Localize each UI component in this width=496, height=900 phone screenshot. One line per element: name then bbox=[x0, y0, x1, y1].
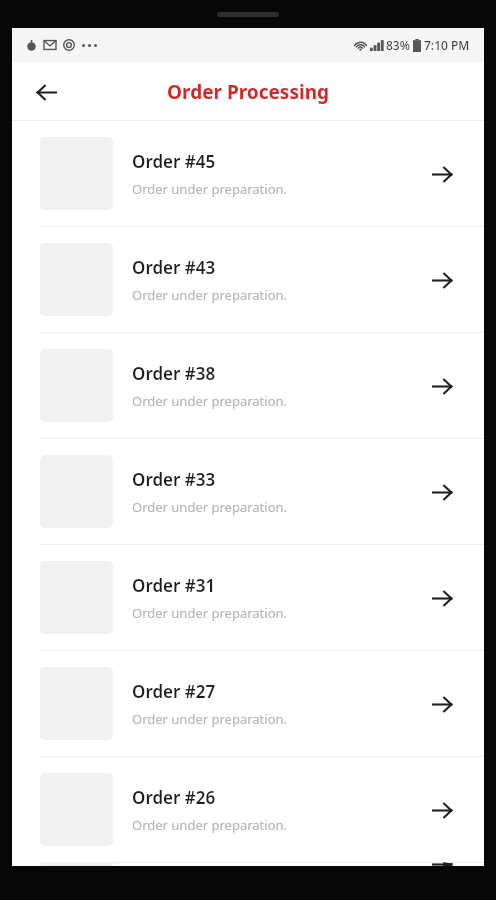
other: Open order 26 bbox=[422, 790, 462, 830]
staticText: Order #33 bbox=[132, 468, 216, 491]
staticText: Order under preparation. bbox=[132, 604, 288, 622]
button[interactable]: Order #24 bbox=[12, 863, 484, 866]
staticText: Order under preparation. bbox=[132, 816, 288, 834]
staticText: Order under preparation. bbox=[132, 498, 288, 516]
staticText: Order #31 bbox=[132, 574, 216, 597]
staticText: Order Processing bbox=[167, 79, 329, 105]
button[interactable]: Order #27 bbox=[12, 651, 484, 756]
staticText: Order #45 bbox=[132, 150, 216, 173]
other: Open order 45 bbox=[422, 154, 462, 194]
other: Open order 24 bbox=[422, 863, 462, 866]
staticText: Order under preparation. bbox=[132, 710, 288, 728]
other: Open order 27 bbox=[422, 684, 462, 724]
other: Open order 38 bbox=[422, 366, 462, 406]
staticText: Order #43 bbox=[132, 256, 216, 279]
other: Open order 43 bbox=[422, 260, 462, 300]
staticText: Order #26 bbox=[132, 786, 216, 809]
staticText: 83% bbox=[386, 37, 410, 53]
staticText: Order #27 bbox=[132, 680, 216, 703]
button[interactable]: Order #45 bbox=[12, 121, 484, 226]
staticText: 7:10 PM bbox=[424, 37, 470, 53]
other: Open order 33 bbox=[422, 472, 462, 512]
button[interactable]: Order #38 bbox=[12, 333, 484, 438]
staticText: Order under preparation. bbox=[132, 286, 288, 304]
button[interactable]: Order #43 bbox=[12, 227, 484, 332]
other: Open order 31 bbox=[422, 578, 462, 618]
staticText: Order under preparation. bbox=[132, 392, 288, 410]
staticText: Order under preparation. bbox=[132, 180, 288, 198]
button[interactable]: Order #31 bbox=[12, 545, 484, 650]
staticText: Order #38 bbox=[132, 362, 216, 385]
button[interactable]: Back bbox=[24, 70, 68, 114]
button[interactable]: Order #33 bbox=[12, 439, 484, 544]
button[interactable]: Order #26 bbox=[12, 757, 484, 862]
